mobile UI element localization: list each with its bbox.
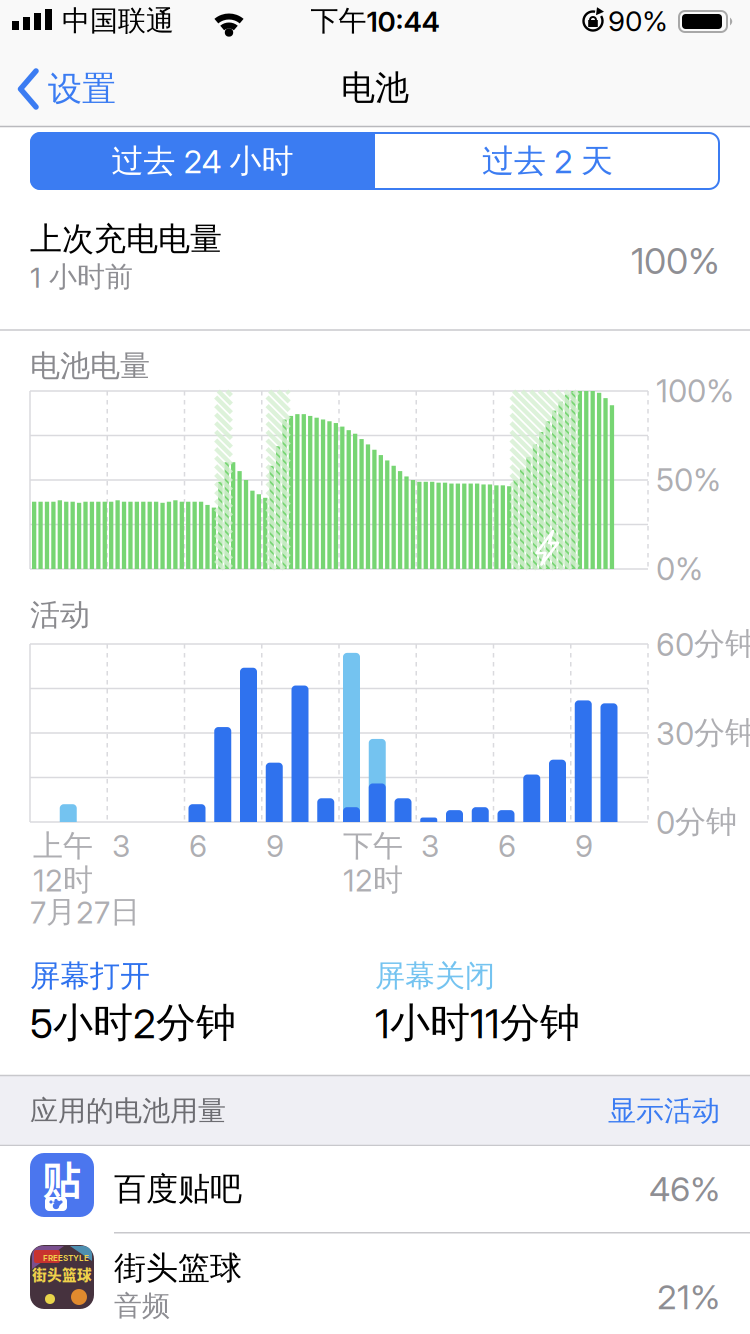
staticText: 1 小时前 [30,259,133,295]
button[interactable]: 贴 [0,1146,750,1232]
staticText: 9 [575,828,593,864]
staticText: 街头篮球 [114,1248,242,1288]
staticText: 100% [631,239,720,283]
staticText: 9 [266,828,284,864]
staticText: 贴 [42,1150,81,1206]
staticText: 显示活动 [608,1093,720,1129]
staticText: 100% [656,372,734,410]
button[interactable]: 返回设置 [0,58,140,128]
staticText: 电池 [341,67,409,109]
staticText: 46% [649,1168,720,1209]
staticText: 6 [189,828,207,864]
staticText: 21% [657,1276,720,1317]
staticText: 下午 [343,827,403,865]
staticText: 0分钟 [656,802,737,842]
staticText: 街头篮球 [32,1263,92,1285]
button[interactable]: 过去 24 小时 [30,132,375,190]
staticText: 90% [608,4,668,38]
staticText: 应用的电池用量 [30,1093,226,1129]
staticText: 5小时2分钟 [30,998,236,1048]
staticText: 音频 [114,1288,170,1324]
staticText: 12时 [343,861,403,899]
staticText: 50% [656,461,721,499]
staticText: 12时 [33,861,93,899]
staticText: 下午10:44 [310,3,439,39]
button[interactable]: 街头篮球 [0,1232,750,1334]
staticText: 0% [656,550,703,588]
staticText: FREESTYLE [43,1253,89,1263]
staticText: 1小时11分钟 [375,998,580,1048]
staticText: 电池电量 [30,347,150,385]
staticText: 屏幕关闭 [375,957,495,995]
staticText: 屏幕打开 [30,957,150,995]
staticText: 60分钟 [656,624,750,664]
staticText: 百度贴吧 [114,1169,242,1209]
staticText: 中国联通 [62,3,174,39]
button[interactable]: 显示活动 [520,1081,720,1141]
staticText: 活动 [30,596,90,634]
staticText: 3 [112,828,130,864]
staticText: 7月27日 [30,893,140,931]
button[interactable]: 过去 2 天 [375,132,720,190]
staticText: 过去 2 天 [482,141,613,181]
staticText: 过去 24 小时 [111,141,293,181]
staticText: 上午 [33,827,93,865]
staticText: 30分钟 [656,713,750,753]
staticText: 设置 [48,68,116,110]
staticText: 6 [498,828,516,864]
staticText: 3 [421,828,439,864]
staticText: 上次充电电量 [30,219,222,259]
